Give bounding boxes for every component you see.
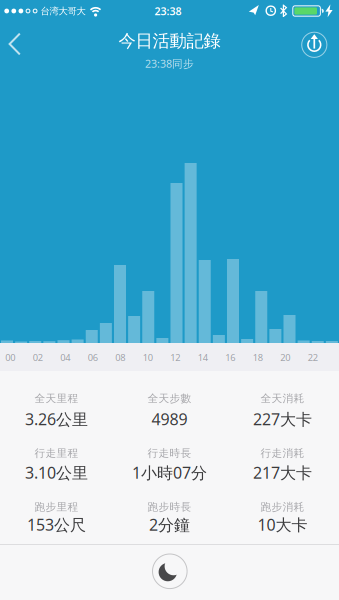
- staticText: 02: [33, 351, 43, 364]
- staticText: 18: [253, 351, 263, 364]
- staticText: 08: [115, 351, 125, 364]
- staticText: 00: [5, 351, 15, 364]
- staticText: 14: [198, 351, 208, 364]
- staticText: 10大卡: [257, 514, 307, 535]
- staticText: 04: [60, 351, 70, 364]
- staticText: 16: [225, 351, 235, 364]
- button[interactable]: [299, 30, 329, 60]
- staticText: 22: [308, 351, 318, 364]
- staticText: 跑步里程: [34, 500, 78, 513]
- staticText: 台湾大哥大: [40, 5, 85, 17]
- staticText: 2分鐘: [149, 514, 190, 535]
- staticText: 23:38同步: [145, 56, 194, 71]
- staticText: 全天里程: [34, 392, 78, 405]
- staticText: 跑步時長: [147, 500, 191, 513]
- staticText: 3.26公里: [25, 408, 88, 430]
- staticText: 全天消耗: [260, 392, 304, 405]
- staticText: 跑步消耗: [260, 500, 304, 513]
- staticText: 全天步數: [147, 392, 191, 405]
- staticText: 10: [143, 351, 153, 364]
- staticText: 行走里程: [34, 447, 78, 460]
- staticText: 06: [88, 351, 98, 364]
- staticText: 23:38: [154, 4, 181, 18]
- button[interactable]: [152, 553, 188, 589]
- staticText: 153公尺: [27, 514, 86, 535]
- staticText: 20: [280, 351, 290, 364]
- staticText: 227大卡: [253, 408, 312, 430]
- staticText: 4989: [151, 408, 187, 430]
- button[interactable]: [0, 29, 30, 59]
- staticText: 今日活動記錄: [118, 30, 220, 52]
- staticText: 行走時長: [147, 447, 191, 460]
- staticText: 12: [170, 351, 180, 364]
- staticText: 1小時07分: [132, 462, 207, 483]
- staticText: 行走消耗: [260, 447, 304, 460]
- staticText: 3.10公里: [25, 462, 88, 483]
- staticText: 217大卡: [253, 462, 312, 483]
